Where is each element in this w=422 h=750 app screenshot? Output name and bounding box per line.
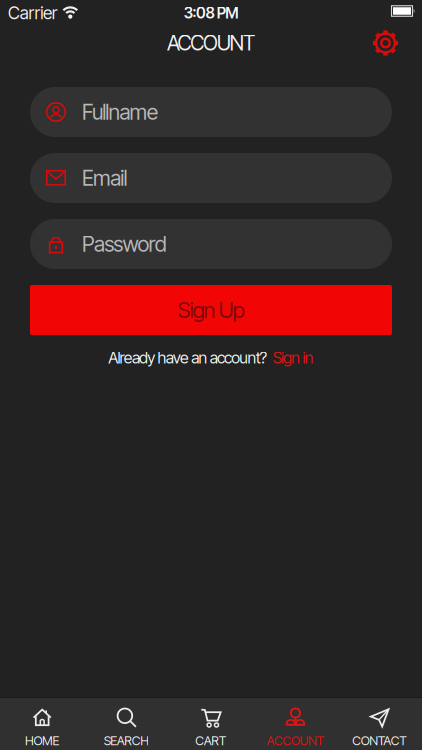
button[interactable]: Email xyxy=(30,153,392,203)
staticText: Fullname xyxy=(82,99,158,125)
staticText: 3:08 PM xyxy=(184,4,238,22)
staticText: CART xyxy=(195,733,227,748)
staticText: CONTACT xyxy=(352,733,407,748)
button[interactable]: CART xyxy=(169,698,253,750)
button[interactable]: Settings xyxy=(372,29,399,56)
staticText: Sign in xyxy=(273,348,314,367)
button[interactable]: HOME xyxy=(0,698,84,750)
button[interactable]: ACCOUNT xyxy=(253,698,338,750)
button[interactable]: Password xyxy=(30,219,392,269)
staticText: ACCOUNT xyxy=(266,733,324,748)
staticText: ACCOUNT xyxy=(167,30,255,55)
button[interactable]: Sign in xyxy=(273,348,314,367)
staticText: HOME xyxy=(25,733,59,748)
staticText: Password xyxy=(82,231,167,257)
button[interactable]: Fullname xyxy=(30,87,392,137)
button[interactable]: CONTACT xyxy=(338,698,422,750)
button[interactable]: SEARCH xyxy=(84,698,169,750)
staticText: Email xyxy=(82,165,127,191)
button[interactable]: Sign Up xyxy=(30,285,392,335)
staticText: Carrier xyxy=(8,2,58,23)
staticText: Sign Up xyxy=(177,297,244,323)
staticText: SEARCH xyxy=(104,733,149,748)
staticText: Already have an account? xyxy=(108,348,267,367)
